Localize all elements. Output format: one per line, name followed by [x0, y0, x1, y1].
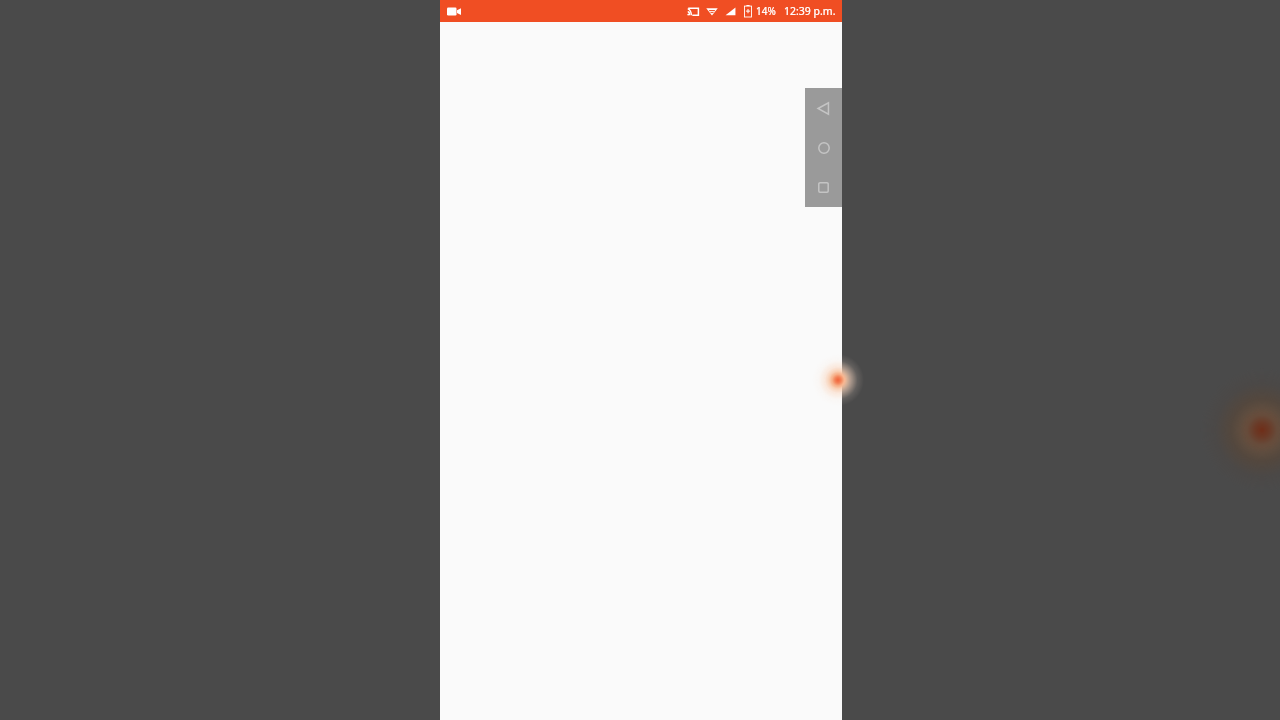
staticText: 14%	[756, 4, 776, 18]
button[interactable]: Home	[805, 128, 842, 167]
button[interactable]: Back	[805, 89, 842, 128]
staticText: 12:39 p.m.	[784, 4, 836, 18]
button[interactable]: Recent apps	[805, 168, 842, 207]
